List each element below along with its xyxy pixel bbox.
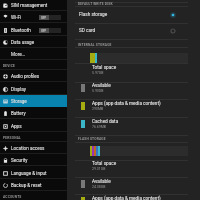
staticText: Cached data xyxy=(92,119,119,125)
staticText: OFF xyxy=(41,16,47,19)
staticText: Available xyxy=(92,83,111,89)
staticText: Language & input xyxy=(11,171,47,176)
button[interactable]: Apps (app data & media content) xyxy=(0,100,200,118)
staticText: Location access xyxy=(11,146,45,151)
button[interactable]: More... xyxy=(0,48,67,60)
button[interactable]: Total space xyxy=(0,160,200,177)
staticText: Apps xyxy=(11,124,22,129)
staticText: Audio profiles xyxy=(11,74,40,79)
staticText: Total space xyxy=(92,161,117,167)
button[interactable]: Battery xyxy=(0,107,67,119)
button[interactable]: SIM management xyxy=(0,0,67,11)
staticText: Security xyxy=(11,158,28,163)
button[interactable]: Language & input xyxy=(0,167,67,179)
staticText: DEFAULT WRITE DISK xyxy=(78,2,113,6)
staticText: Data usage xyxy=(11,40,35,45)
button[interactable]: Audio profiles xyxy=(0,70,67,82)
staticText: Backup & reset xyxy=(11,183,42,188)
button[interactable]: Flash storage xyxy=(0,6,200,23)
button[interactable]: Toggle Wi-Fi xyxy=(39,15,61,20)
staticText: PERSONAL xyxy=(3,136,21,140)
staticText: Apps (app data & media content) xyxy=(92,101,161,107)
button[interactable]: Total space xyxy=(0,64,200,82)
staticText: Apps (app data & media content) xyxy=(92,196,161,200)
staticText: Battery xyxy=(11,111,26,116)
staticText: 29.31GB xyxy=(92,167,106,171)
button[interactable]: Security xyxy=(0,154,67,166)
staticText: 5.93GB xyxy=(92,89,104,93)
staticText: 5.97GB xyxy=(92,71,104,75)
staticText: 290MB xyxy=(92,107,104,111)
button[interactable]: Backup & reset xyxy=(0,179,67,191)
button[interactable]: Apps xyxy=(0,120,67,132)
button[interactable]: Location access xyxy=(0,142,67,154)
staticText: Storage xyxy=(11,99,27,104)
button[interactable]: Toggle Bluetooth xyxy=(39,28,61,33)
staticText: DEVICE xyxy=(3,64,16,68)
button[interactable]: Storage xyxy=(0,95,67,107)
staticText: Total space xyxy=(92,65,117,71)
staticText: OFF xyxy=(41,29,47,32)
staticText: INTERNAL STORAGE xyxy=(78,43,112,47)
staticText: Available xyxy=(92,179,111,185)
staticText: Bluetooth xyxy=(11,28,31,33)
button[interactable]: Data usage xyxy=(0,36,67,48)
button[interactable]: Cached data xyxy=(0,118,200,136)
staticText: SIM management xyxy=(11,3,48,8)
button[interactable]: Apps (app data & media content) xyxy=(0,195,200,200)
button[interactable]: Available xyxy=(0,82,200,100)
staticText: FLASH STORAGE xyxy=(78,137,106,141)
staticText: Wi-Fi xyxy=(11,15,22,20)
staticText: More... xyxy=(11,52,26,57)
button[interactable]: Available xyxy=(0,178,200,195)
button[interactable]: SD card xyxy=(0,23,200,38)
staticText: ACCOUNTS xyxy=(3,195,22,199)
staticText: 76.69MB xyxy=(92,125,107,129)
staticText: 24.38GB xyxy=(92,185,106,189)
button[interactable]: Display xyxy=(0,83,67,95)
staticText: Flash storage xyxy=(79,12,108,18)
staticText: SD card xyxy=(79,28,96,34)
staticText: Display xyxy=(11,87,26,92)
button[interactable]: Bluetooth xyxy=(0,24,67,36)
button[interactable]: Wi-Fi xyxy=(0,11,67,23)
